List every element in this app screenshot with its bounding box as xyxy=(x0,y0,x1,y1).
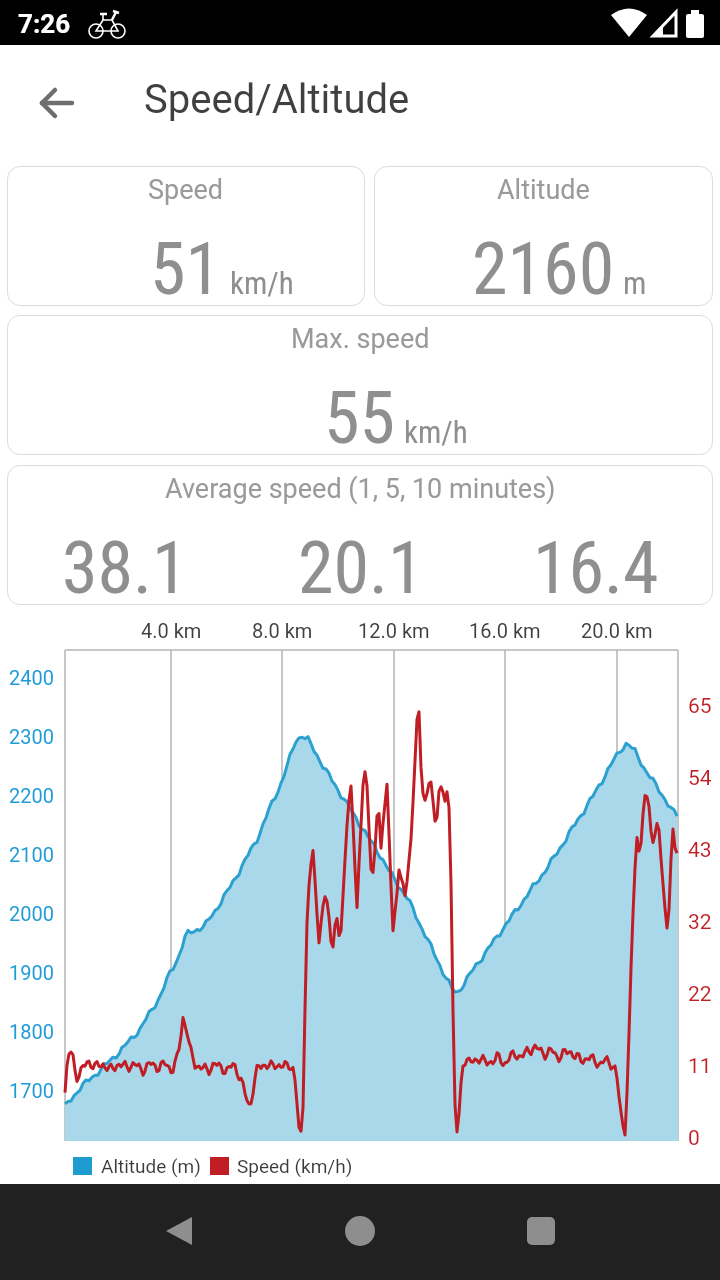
staticText: km/h xyxy=(230,265,294,301)
staticText: 20.1 xyxy=(298,526,424,610)
staticText: 2100 xyxy=(9,843,54,866)
staticText: 12.0 km xyxy=(358,619,430,642)
staticText: 1700 xyxy=(9,1079,54,1102)
staticText: 38.1 xyxy=(62,526,188,610)
staticText: 4.0 km xyxy=(141,619,202,642)
staticText: 8.0 km xyxy=(252,619,313,642)
staticText: 11 xyxy=(688,1054,712,1079)
staticText: Average speed (1, 5, 10 minutes) xyxy=(165,473,556,505)
staticText: 1800 xyxy=(9,1020,54,1043)
button[interactable] xyxy=(345,1216,375,1246)
staticText: Max. speed xyxy=(291,323,430,355)
staticText: 16.4 xyxy=(533,526,659,610)
staticText: 55 xyxy=(324,376,396,460)
staticText: 2160 xyxy=(472,227,615,311)
staticText: 22 xyxy=(688,982,712,1007)
button[interactable]: Average speed (1, 5, 10 minutes) xyxy=(7,465,713,605)
staticText: 0 xyxy=(688,1126,700,1151)
staticText: 65 xyxy=(688,694,712,719)
staticText: 2000 xyxy=(9,902,54,925)
staticText: Speed xyxy=(148,174,224,206)
button[interactable] xyxy=(526,1216,556,1246)
staticText: 51 xyxy=(150,227,222,311)
staticText: 2300 xyxy=(9,725,54,748)
button[interactable] xyxy=(164,1216,194,1246)
staticText: Altitude (m) xyxy=(101,1155,201,1177)
button[interactable]: Altitude xyxy=(374,166,713,306)
staticText: 32 xyxy=(688,910,712,935)
button[interactable]: Max. speed xyxy=(7,315,713,455)
staticText: 1900 xyxy=(9,961,54,984)
staticText: 20.0 km xyxy=(581,619,653,642)
staticText: Speed (km/h) xyxy=(237,1155,353,1177)
staticText: 16.0 km xyxy=(469,619,541,642)
staticText: km/h xyxy=(404,414,468,450)
staticText: 54 xyxy=(688,766,712,791)
staticText: 7:26 xyxy=(18,9,71,39)
button[interactable] xyxy=(40,87,74,121)
staticText: Speed/Altitude xyxy=(144,76,410,123)
staticText: Altitude xyxy=(497,174,590,206)
staticText: 43 xyxy=(688,838,712,863)
button[interactable]: Speed xyxy=(7,166,365,306)
staticText: m xyxy=(623,265,647,301)
staticText: 2200 xyxy=(9,784,54,807)
staticText: 2400 xyxy=(9,666,54,689)
